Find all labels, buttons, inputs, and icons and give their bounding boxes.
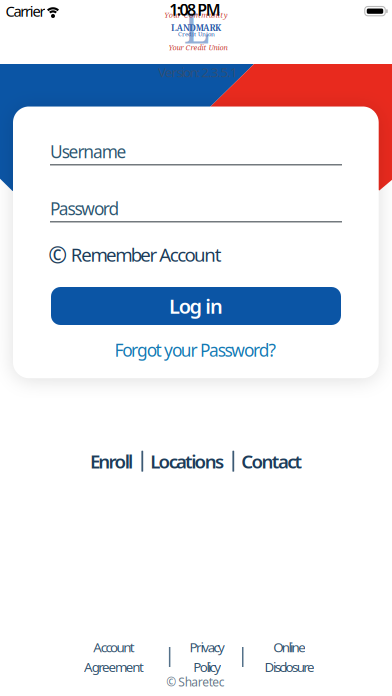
- staticText: © Sharetec: [166, 674, 225, 690]
- staticText: Remember Account: [71, 242, 222, 267]
- staticText: Enroll: [90, 449, 133, 474]
- staticText: L: [183, 0, 210, 56]
- staticText: Policy: [193, 658, 221, 676]
- button[interactable]: Account: [84, 638, 144, 676]
- staticText: Online: [273, 638, 306, 656]
- button[interactable]: Online: [264, 638, 315, 676]
- staticText: 1:08 PM: [169, 0, 221, 20]
- staticText: Locations: [150, 449, 224, 474]
- staticText: Contact: [241, 449, 302, 474]
- staticText: Your Community: [164, 10, 228, 20]
- staticText: ©: [48, 239, 67, 269]
- staticText: Forgot your Password?: [114, 338, 276, 361]
- button[interactable]: Forgot your Password?: [114, 338, 276, 361]
- button[interactable]: Log in: [51, 287, 341, 325]
- staticText: Version: 2.3.5.1: [158, 63, 238, 81]
- button[interactable]: Password: [50, 197, 342, 222]
- staticText: Carrier: [6, 1, 45, 21]
- staticText: Username: [50, 140, 127, 163]
- button[interactable]: Username: [50, 140, 342, 165]
- staticText: LANDMARK: [171, 22, 221, 34]
- staticText: Password: [50, 197, 120, 220]
- staticText: Disclosure: [264, 658, 315, 676]
- staticText: Credit Union: [178, 30, 215, 38]
- staticText: Account: [93, 638, 135, 656]
- button[interactable]: Contact: [241, 449, 302, 474]
- staticText: Your Credit Union: [168, 42, 227, 52]
- button[interactable]: Enroll: [90, 449, 133, 474]
- button[interactable]: ©: [48, 239, 222, 269]
- button[interactable]: Privacy: [189, 638, 225, 676]
- staticText: Privacy: [189, 638, 225, 656]
- staticText: Log in: [169, 293, 223, 319]
- staticText: Agreement: [84, 658, 144, 676]
- button[interactable]: Locations: [150, 449, 224, 474]
